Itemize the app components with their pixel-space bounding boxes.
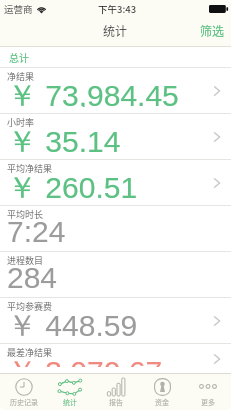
staticText: 净结果 bbox=[7, 70, 35, 83]
staticText: ￥ 260.51 bbox=[7, 169, 138, 199]
button[interactable]: Reports bbox=[93, 374, 139, 410]
staticText: 更多 bbox=[201, 397, 215, 407]
button[interactable]: 筛选 bbox=[190, 18, 231, 43]
button[interactable]: More bbox=[185, 374, 231, 410]
button[interactable]: 净结果 bbox=[0, 68, 231, 113]
other: Reports bbox=[107, 378, 125, 396]
button[interactable]: 平均净结果 bbox=[0, 160, 231, 205]
staticText: ￥ 35.14 bbox=[7, 123, 121, 153]
staticText: 报告 bbox=[109, 397, 123, 407]
staticText: 平均时长 bbox=[7, 208, 44, 221]
staticText: ￥ 3,070.67 bbox=[7, 353, 163, 367]
other: Statistics bbox=[58, 379, 82, 395]
button[interactable]: 最差净结果 bbox=[0, 344, 231, 373]
staticText: 总计 bbox=[9, 50, 29, 64]
staticText: 资金 bbox=[155, 397, 169, 407]
button[interactable]: Statistics bbox=[47, 374, 93, 410]
staticText: 统计 bbox=[63, 397, 77, 407]
staticText: 小时率 bbox=[7, 116, 35, 129]
staticText: 最差净结果 bbox=[7, 346, 53, 359]
other: History bbox=[15, 378, 33, 396]
staticText: ￥ 73,984.45 bbox=[7, 77, 179, 107]
staticText: 进程数目 bbox=[7, 254, 44, 267]
staticText: 平均参赛费 bbox=[7, 300, 53, 313]
staticText: 下午3:43 bbox=[98, 2, 137, 16]
staticText: 7:24 bbox=[7, 215, 66, 245]
button[interactable]: History bbox=[0, 374, 47, 410]
other: Funds bbox=[154, 378, 171, 396]
button[interactable]: 小时率 bbox=[0, 114, 231, 159]
staticText: 运营商 bbox=[4, 2, 33, 16]
staticText: 平均净结果 bbox=[7, 162, 53, 175]
staticText: ￥ 448.59 bbox=[7, 307, 138, 337]
staticText: 历史记录 bbox=[10, 397, 38, 407]
button[interactable]: 平均时长 bbox=[0, 206, 231, 251]
button[interactable]: Funds bbox=[139, 374, 185, 410]
other: More bbox=[199, 378, 217, 396]
staticText: 筛选 bbox=[200, 22, 225, 39]
staticText: 统计 bbox=[103, 22, 128, 39]
button[interactable]: 进程数目 bbox=[0, 252, 231, 297]
staticText: 284 bbox=[7, 261, 58, 291]
button[interactable]: 平均参赛费 bbox=[0, 298, 231, 343]
